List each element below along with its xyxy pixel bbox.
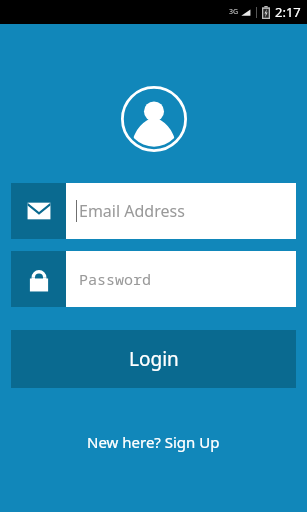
other: Email	[11, 183, 66, 239]
button[interactable]: Password	[11, 251, 296, 307]
staticText: New here? Sign Up	[87, 432, 220, 452]
button[interactable]: Login	[11, 330, 296, 388]
staticText: Password	[79, 269, 152, 289]
button[interactable]: New here? Sign Up	[77, 426, 230, 458]
staticText: Login	[129, 346, 179, 372]
staticText: Email Address	[79, 200, 185, 222]
staticText: 2:17	[275, 3, 301, 21]
other: Password	[11, 251, 66, 307]
button[interactable]: Email	[11, 183, 296, 239]
staticText: 3G	[229, 7, 239, 17]
